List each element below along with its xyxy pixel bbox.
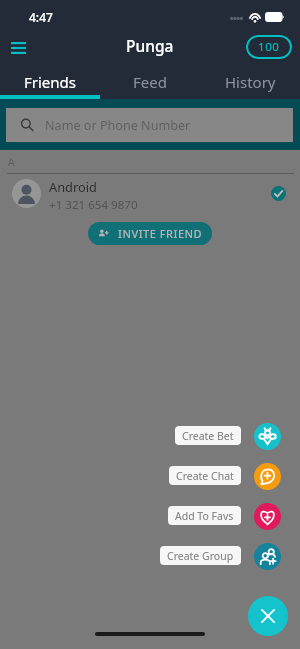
button[interactable]: Create Bet — [254, 423, 281, 450]
staticText: INVITE FRIEND — [118, 226, 203, 241]
staticText: Add To Favs — [175, 509, 234, 523]
staticText: Feed — [133, 72, 167, 92]
staticText: Friends — [24, 72, 76, 92]
staticText: 100 — [258, 39, 280, 55]
button[interactable]: Android — [0, 178, 300, 209]
button[interactable]: Feed — [100, 67, 200, 99]
staticText: A — [8, 155, 15, 169]
button[interactable]: Create Group — [254, 543, 281, 570]
button[interactable]: Create Chat — [169, 466, 241, 485]
staticText: +1 321 654 9870 — [49, 197, 138, 209]
button[interactable]: Create Chat — [254, 463, 281, 490]
staticText: Create Bet — [182, 429, 234, 443]
staticText: Punga — [126, 35, 174, 56]
button[interactable]: History — [200, 67, 300, 99]
button[interactable]: Add To Favs — [254, 503, 281, 530]
staticText: History — [225, 72, 276, 92]
button[interactable]: Menu — [4, 33, 33, 62]
staticText: Name or Phone Number — [45, 117, 191, 134]
button[interactable]: Friends — [0, 67, 100, 99]
button[interactable]: Add To Favs — [168, 506, 241, 525]
staticText: Create Chat — [176, 469, 234, 483]
staticText: 4:47 — [29, 9, 53, 25]
button[interactable]: Name or Phone Number — [6, 108, 293, 142]
button[interactable]: Close menu — [248, 596, 288, 636]
button[interactable]: 100 — [246, 35, 292, 59]
staticText: Create Group — [167, 549, 234, 563]
staticText: Android — [49, 178, 97, 195]
button[interactable]: INVITE FRIEND — [88, 222, 212, 245]
button[interactable]: Create Group — [160, 546, 241, 565]
button[interactable]: Create Bet — [175, 426, 241, 445]
